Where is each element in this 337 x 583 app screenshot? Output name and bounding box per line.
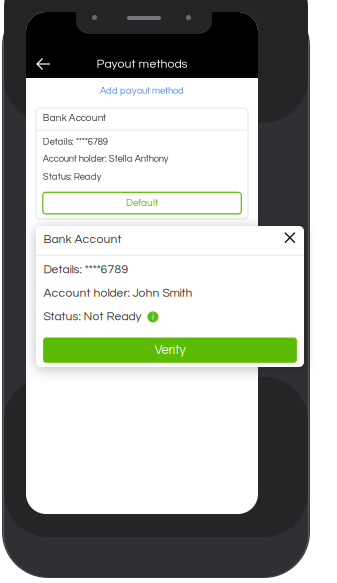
- staticText: Bank Account: [43, 113, 106, 123]
- staticText: i: [152, 312, 154, 322]
- staticText: Account holder: Stella Anthony: [43, 154, 169, 164]
- staticText: Add payout method: [100, 86, 184, 96]
- staticText: Bank Account: [43, 233, 121, 246]
- button[interactable]: Back: [26, 12, 50, 32]
- staticText: Account holder: John Smith: [43, 287, 192, 299]
- staticText: Details: ****6789: [43, 137, 108, 147]
- button[interactable]: Verify: [36, 226, 290, 251]
- button[interactable]: Add payout method: [26, 12, 258, 30]
- staticText: Status: Not Ready: [43, 310, 141, 323]
- button[interactable]: Close: [36, 226, 48, 238]
- button[interactable]: Default: [36, 108, 234, 130]
- staticText: Status: Ready: [43, 172, 102, 182]
- staticText: Details: ****6789: [43, 263, 128, 276]
- staticText: Default: [126, 198, 158, 208]
- staticText: Payout methods: [96, 58, 187, 70]
- staticText: Verify: [154, 344, 185, 357]
